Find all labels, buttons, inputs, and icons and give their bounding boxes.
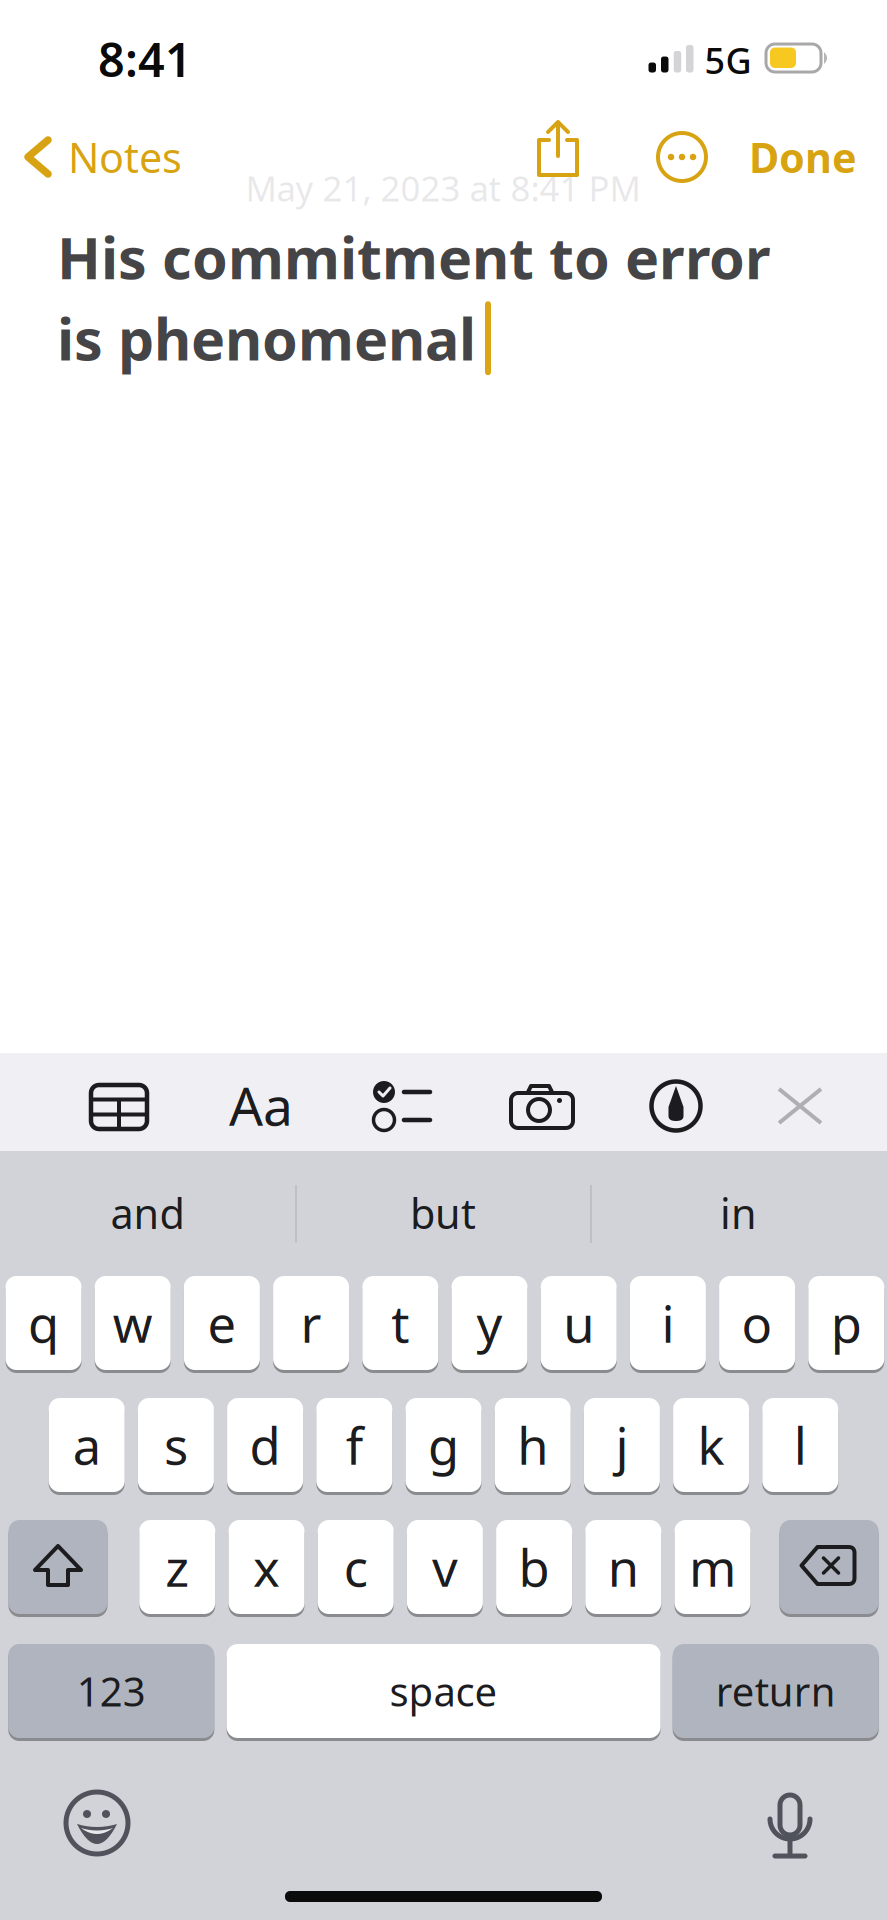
button[interactable]: [745, 1778, 835, 1868]
button[interactable]: [494, 1062, 590, 1152]
staticText: k: [698, 1411, 725, 1479]
staticText: His commitment to error: [57, 219, 771, 295]
staticText: r: [301, 1289, 322, 1357]
button[interactable]: w: [92, 1273, 174, 1373]
button[interactable]: c: [315, 1517, 397, 1617]
staticText: i: [661, 1289, 674, 1357]
button[interactable]: i: [627, 1273, 709, 1373]
button[interactable]: [760, 1066, 840, 1146]
button[interactable]: space: [224, 1641, 664, 1741]
button[interactable]: but: [298, 1163, 588, 1263]
button[interactable]: [650, 125, 714, 189]
button[interactable]: b: [493, 1517, 575, 1617]
staticText: f: [346, 1411, 363, 1479]
button[interactable]: y: [448, 1273, 530, 1373]
staticText: but: [410, 1186, 476, 1240]
staticText: Aa: [229, 1070, 293, 1140]
staticText: and: [110, 1186, 184, 1240]
button[interactable]: and: [2, 1163, 292, 1263]
staticText: s: [164, 1411, 188, 1479]
button[interactable]: o: [716, 1273, 798, 1373]
staticText: h: [517, 1411, 548, 1479]
button[interactable]: u: [538, 1273, 620, 1373]
button[interactable]: t: [359, 1273, 441, 1373]
staticText: 123: [77, 1664, 146, 1717]
staticText: q: [28, 1289, 59, 1357]
button[interactable]: return: [670, 1641, 882, 1741]
button[interactable]: r: [270, 1273, 352, 1373]
staticText: o: [742, 1289, 773, 1357]
staticText: Done: [749, 130, 857, 184]
button[interactable]: n: [582, 1517, 664, 1617]
staticText: n: [608, 1533, 639, 1601]
staticText: c: [344, 1533, 368, 1601]
button[interactable]: Notes: [18, 125, 188, 189]
staticText: is phenomenal: [57, 300, 476, 376]
staticText: 8:41: [98, 28, 192, 90]
button[interactable]: Done: [677, 129, 857, 185]
staticText: l: [794, 1411, 807, 1479]
button[interactable]: q: [2, 1273, 84, 1373]
button[interactable]: [523, 119, 593, 183]
button[interactable]: a: [46, 1395, 128, 1495]
staticText: space: [390, 1664, 498, 1717]
staticText: v: [432, 1533, 458, 1601]
button[interactable]: s: [135, 1395, 217, 1495]
button[interactable]: p: [805, 1273, 887, 1373]
button[interactable]: d: [224, 1395, 306, 1495]
button[interactable]: e: [181, 1273, 263, 1373]
staticText: Notes: [68, 130, 182, 184]
button[interactable]: v: [404, 1517, 486, 1617]
staticText: a: [73, 1411, 101, 1479]
staticText: u: [563, 1289, 594, 1357]
button[interactable]: m: [671, 1517, 753, 1617]
button[interactable]: [776, 1517, 881, 1617]
staticText: t: [391, 1289, 409, 1357]
button[interactable]: k: [670, 1395, 752, 1495]
staticText: e: [207, 1289, 236, 1357]
button[interactable]: l: [759, 1395, 841, 1495]
staticText: 5G: [704, 36, 751, 84]
staticText: p: [831, 1289, 862, 1357]
button[interactable]: [5, 1517, 110, 1617]
staticText: b: [519, 1533, 550, 1601]
staticText: May 21, 2023 at 8:41 PM: [245, 165, 640, 211]
button[interactable]: z: [136, 1517, 218, 1617]
staticText: z: [165, 1533, 189, 1601]
button[interactable]: [74, 1062, 164, 1152]
staticText: j: [615, 1411, 628, 1479]
button[interactable]: [356, 1061, 446, 1151]
staticText: x: [253, 1533, 280, 1601]
button[interactable]: g: [402, 1395, 484, 1495]
button[interactable]: x: [225, 1517, 307, 1617]
staticText: in: [720, 1186, 757, 1240]
staticText: w: [113, 1289, 153, 1357]
button[interactable]: [631, 1061, 721, 1151]
button[interactable]: h: [492, 1395, 574, 1495]
button[interactable]: in: [593, 1163, 883, 1263]
staticText: return: [716, 1664, 836, 1717]
button[interactable]: [52, 1778, 142, 1868]
button[interactable]: 123: [5, 1641, 217, 1741]
button[interactable]: Aa: [211, 1060, 311, 1150]
staticText: m: [689, 1533, 736, 1601]
button[interactable]: j: [581, 1395, 663, 1495]
staticText: y: [476, 1289, 502, 1357]
button[interactable]: f: [313, 1395, 395, 1495]
staticText: g: [428, 1411, 459, 1479]
staticText: d: [250, 1411, 281, 1479]
